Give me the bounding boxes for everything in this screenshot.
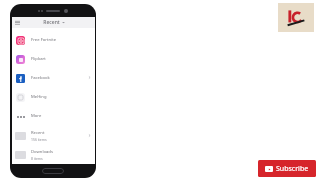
button[interactable]: Subscribe — [258, 160, 316, 177]
button[interactable]: Facebook — [12, 68, 95, 87]
button[interactable]: Downloads — [12, 145, 95, 164]
button[interactable]: Open navigation drawer — [13, 18, 22, 27]
staticText: Recent — [31, 130, 45, 136]
staticText: 156 items — [31, 137, 47, 142]
staticText: MeHing — [31, 94, 92, 100]
staticText: Downloads — [31, 149, 53, 155]
staticText: 8 items — [31, 156, 43, 161]
staticText: Free Fortnite — [31, 37, 92, 43]
staticText: Subscribe — [276, 164, 309, 174]
button[interactable]: Free Fortnite — [12, 30, 95, 49]
staticText: Recent — [43, 19, 60, 26]
button[interactable]: MeHing — [12, 87, 95, 106]
staticText: More — [31, 113, 92, 119]
button[interactable]: More — [12, 106, 95, 125]
button[interactable]: Recent — [43, 19, 65, 26]
button[interactable]: Recent — [12, 126, 95, 145]
staticText: Facebook — [31, 75, 88, 81]
staticText: Flipkart — [31, 56, 92, 62]
button[interactable]: Flipkart — [12, 49, 95, 68]
